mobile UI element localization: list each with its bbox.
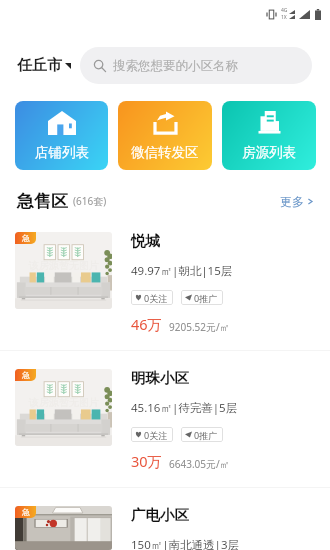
button[interactable]: 0关注 (131, 427, 173, 442)
staticText: 该房源暂无图片 (29, 259, 99, 272)
staticText: 1X (281, 14, 287, 21)
staticText: 4G (281, 7, 288, 14)
staticText: 急售区 (17, 191, 68, 212)
staticText: 明珠小区 (131, 369, 189, 387)
button[interactable]: 急 (0, 488, 330, 550)
staticText: 0关注 (144, 292, 168, 304)
button[interactable]: 0推广 (181, 290, 223, 305)
button[interactable]: 任丘市 (17, 56, 71, 75)
staticText: 49.97㎡|朝北|15层 (131, 263, 233, 279)
staticText: 急 (22, 507, 30, 517)
staticText: 微信转发区 (131, 144, 199, 161)
staticText: 房源列表 (242, 144, 296, 161)
button[interactable]: 该房源暂无图片 (0, 351, 330, 487)
button[interactable]: 0关注 (131, 290, 173, 305)
staticText: 搜索您想要的小区名称 (113, 58, 238, 74)
staticText: 广电小区 (131, 506, 189, 524)
staticText: 46万 (131, 314, 163, 334)
staticText: 急 (22, 370, 30, 380)
staticText: 0关注 (144, 429, 168, 441)
staticText: 0推广 (194, 292, 218, 304)
staticText: 店铺列表 (35, 144, 89, 161)
button[interactable]: 搜索您想要的小区名称 (80, 47, 312, 84)
staticText: 30万 (131, 451, 163, 471)
button[interactable]: 房源列表 (222, 101, 316, 170)
button[interactable]: 微信转发区 (118, 101, 212, 170)
button[interactable]: 该房源暂无图片 (0, 214, 330, 350)
staticText: (616套) (73, 194, 107, 208)
staticText: 0推广 (194, 429, 218, 441)
staticText: 该房源暂无图片 (29, 396, 99, 409)
staticText: 45.16㎡|待完善|5层 (131, 400, 238, 416)
staticText: 150㎡|南北通透|3层 (131, 537, 239, 550)
staticText: 急 (22, 233, 30, 243)
staticText: 更多 (280, 194, 304, 209)
button[interactable]: 更多 (280, 194, 314, 209)
staticText: 6643.05元/㎡ (169, 457, 230, 471)
staticText: 悦城 (131, 232, 160, 250)
staticText: 任丘市 (17, 56, 62, 75)
staticText: 9205.52元/㎡ (169, 320, 230, 334)
button[interactable]: 0推广 (181, 427, 223, 442)
button[interactable]: 店铺列表 (15, 101, 108, 170)
